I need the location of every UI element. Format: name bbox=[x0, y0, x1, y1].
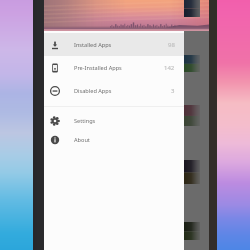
button[interactable]: Disabled Apps bbox=[44, 81, 184, 101]
staticText: Pre-Installed Apps bbox=[74, 64, 122, 72]
button[interactable]: Installed Apps bbox=[44, 35, 184, 55]
staticText: Disabled Apps bbox=[74, 87, 112, 95]
staticText: 98 bbox=[168, 41, 175, 49]
staticText: 142 bbox=[164, 64, 175, 72]
staticText: 3 bbox=[171, 87, 175, 95]
button[interactable]: Settings bbox=[44, 111, 184, 131]
staticText: Settings bbox=[74, 117, 96, 125]
staticText: Installed Apps bbox=[74, 41, 112, 49]
staticText: About bbox=[74, 136, 90, 144]
button[interactable]: Pre-Installed Apps bbox=[44, 58, 184, 78]
button[interactable]: About bbox=[44, 130, 184, 150]
